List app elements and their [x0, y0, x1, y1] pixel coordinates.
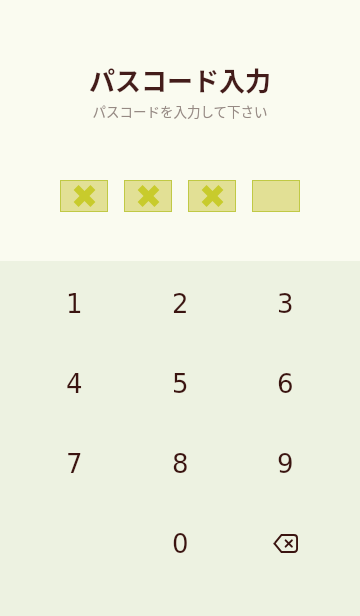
button[interactable]: 9	[235, 428, 335, 500]
staticText: パスコードを入力して下さい	[0, 101, 360, 121]
staticText: 2	[172, 289, 189, 319]
button[interactable]: 7	[24, 428, 124, 500]
button[interactable]: 5	[130, 348, 230, 420]
button[interactable]: 8	[130, 428, 230, 500]
staticText: 1	[66, 289, 83, 319]
button[interactable]: 2	[130, 268, 230, 340]
staticText: 6	[277, 369, 294, 399]
staticText: 9	[277, 449, 294, 479]
button[interactable]: 3	[235, 268, 335, 340]
button[interactable]: 6	[235, 348, 335, 420]
staticText: パスコード入力	[0, 61, 360, 99]
staticText: 3	[277, 289, 294, 319]
staticText: 5	[172, 369, 189, 399]
button[interactable]: 1	[24, 268, 124, 340]
staticText: 0	[172, 529, 189, 559]
staticText: 8	[172, 449, 189, 479]
button[interactable]: Delete	[235, 508, 335, 580]
staticText: 4	[66, 369, 83, 399]
button[interactable]: 0	[130, 508, 230, 580]
staticText: 7	[66, 449, 83, 479]
button[interactable]: 4	[24, 348, 124, 420]
